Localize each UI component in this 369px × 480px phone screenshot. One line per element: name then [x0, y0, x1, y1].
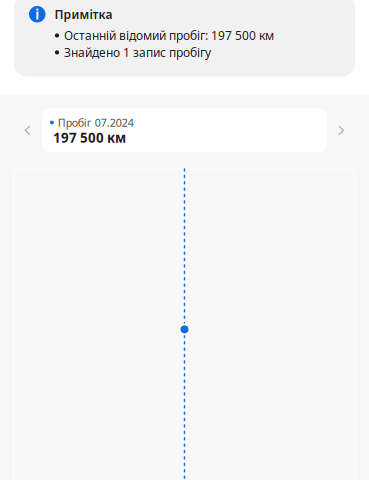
staticText: Примітка — [54, 6, 112, 22]
staticText: Знайдено 1 запис пробігу — [64, 44, 211, 60]
staticText: 197 500 км — [53, 129, 126, 146]
staticText: Останній відомий пробіг: 197 500 км — [64, 27, 274, 43]
button[interactable]: Попередній — [13, 108, 42, 152]
staticText: i — [35, 5, 39, 23]
staticText: Пробіг 07.2024 — [58, 115, 134, 130]
button[interactable]: Наступний — [327, 108, 356, 152]
